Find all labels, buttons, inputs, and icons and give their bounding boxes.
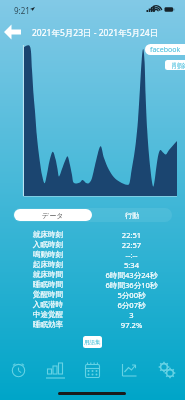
staticText: --:-- <box>78 250 185 260</box>
staticText: 就床時刻 <box>18 230 78 240</box>
staticText: 3 <box>78 310 185 320</box>
staticText: 入眠潜時 <box>18 300 78 310</box>
staticText: 6時間43分24秒 <box>78 270 185 280</box>
staticText: 睡眠時間 <box>18 280 78 290</box>
staticText: データ <box>42 211 64 220</box>
staticText: 22:57 <box>78 240 185 250</box>
staticText: facebook <box>150 45 181 55</box>
staticText: 入眠時刻 <box>18 240 78 250</box>
staticText: 中途覚醒 <box>18 310 78 320</box>
staticText: 6分07秒 <box>78 300 185 310</box>
staticText: 就床時間 <box>18 270 78 280</box>
staticText: 鳴動時刻 <box>18 250 78 260</box>
button[interactable]: 削除 <box>165 60 185 70</box>
button[interactable]: Calendar <box>74 352 111 388</box>
button[interactable]: Back <box>2 21 24 43</box>
button[interactable]: Trends <box>111 352 148 388</box>
button[interactable]: Alarm <box>0 352 37 388</box>
staticText: 6時間36分10秒 <box>78 280 185 290</box>
staticText: 覚醒時間 <box>18 290 78 300</box>
staticText: 97.2% <box>78 320 185 330</box>
staticText: 睡眠効率 <box>18 320 78 330</box>
staticText: 5:34 <box>78 260 185 270</box>
staticText: 行動 <box>125 211 139 220</box>
button[interactable]: Settings <box>148 352 185 388</box>
button[interactable]: 用語集 <box>83 336 102 348</box>
button[interactable]: データ <box>14 209 92 221</box>
staticText: 用語集 <box>84 339 101 346</box>
button[interactable]: facebook <box>145 44 185 55</box>
staticText: 削除 <box>172 61 185 70</box>
staticText: 2021年5月23日 - 2021年5月24日 <box>32 27 159 39</box>
staticText: 5分00秒 <box>78 290 185 300</box>
staticText: 起床時刻 <box>18 260 78 270</box>
button[interactable]: 行動 <box>93 209 171 221</box>
staticText: 9:21 <box>14 5 30 16</box>
staticText: 22:51 <box>78 230 185 240</box>
button[interactable]: Statistics <box>37 352 74 388</box>
